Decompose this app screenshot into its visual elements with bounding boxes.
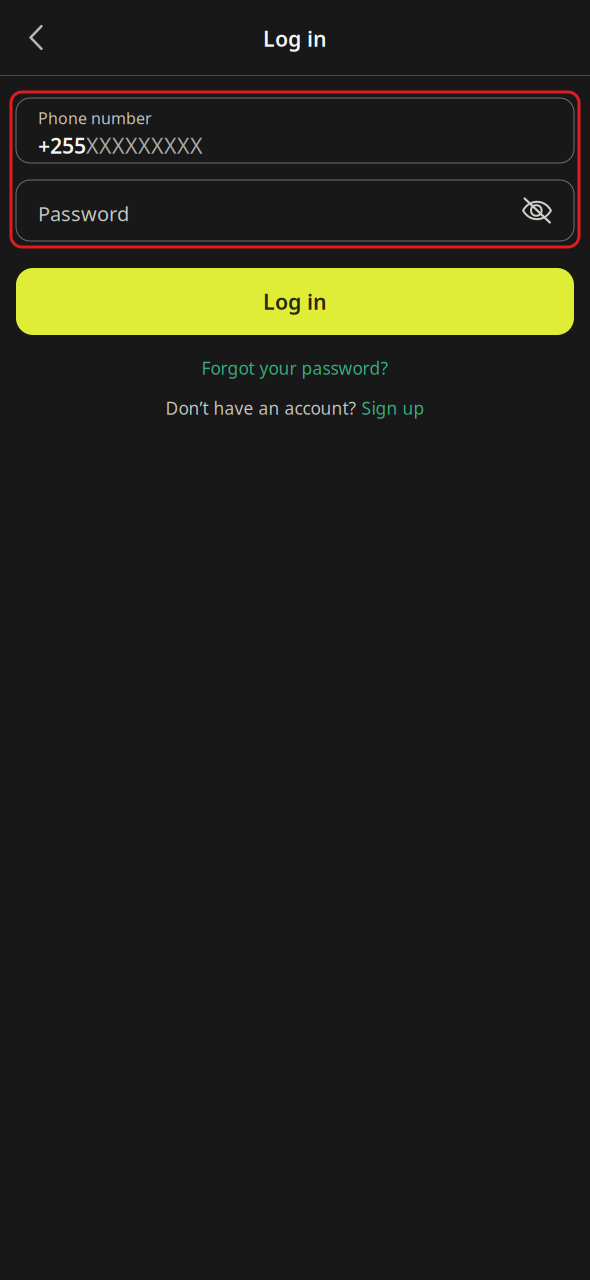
staticText: Forgot your password? [201, 356, 388, 379]
staticText: Phone number [38, 107, 152, 129]
button[interactable]: Sign up [361, 396, 424, 419]
button[interactable]: Back [13, 14, 59, 60]
staticText: Sign up [361, 396, 424, 419]
staticText: XXXXXXXXX [86, 131, 203, 160]
button[interactable]: Show password [514, 187, 560, 233]
button[interactable]: Phone number [16, 98, 574, 163]
staticText: Don’t have an account? [165, 396, 361, 419]
staticText: Password [38, 200, 129, 227]
button[interactable]: Password [38, 186, 129, 241]
button[interactable]: Log in [16, 268, 574, 335]
staticText: Log in [263, 287, 327, 316]
staticText: +255 [38, 131, 86, 160]
staticText: Log in [263, 24, 327, 53]
button[interactable]: Forgot your password? [201, 356, 388, 380]
